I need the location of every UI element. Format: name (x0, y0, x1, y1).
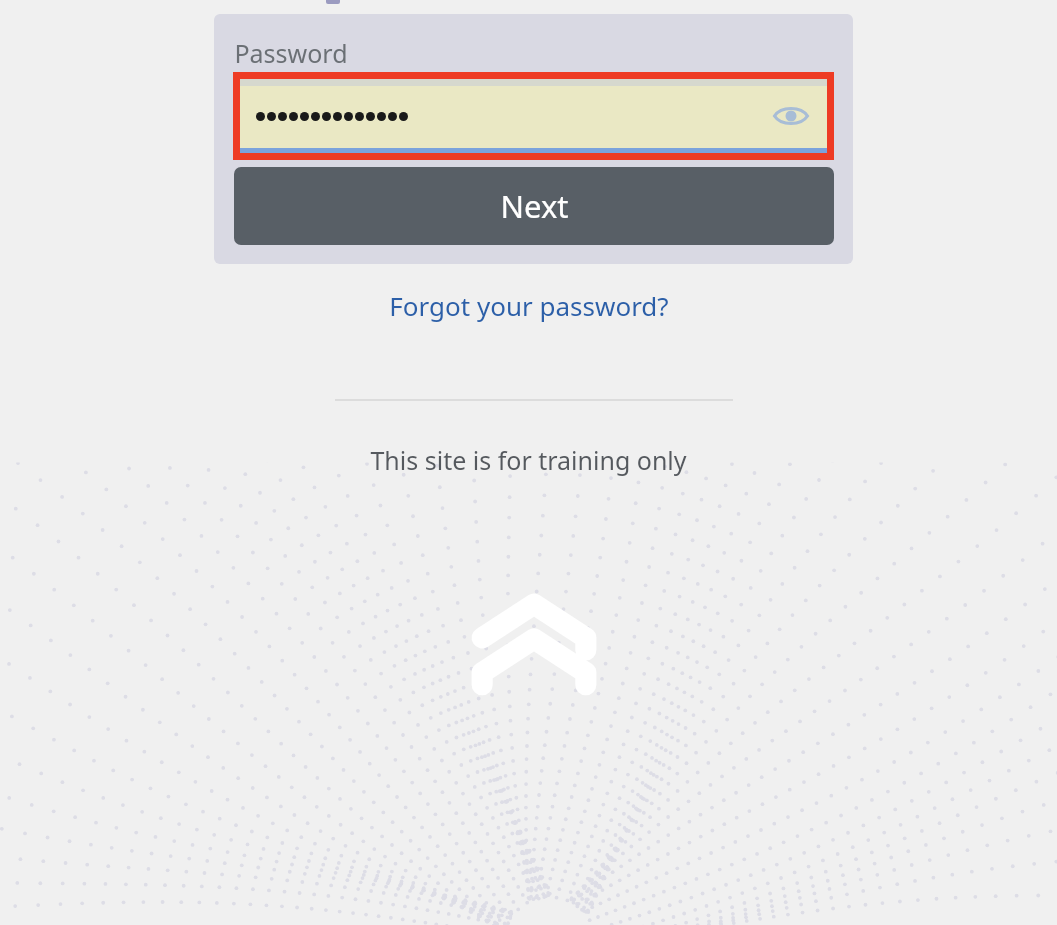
staticText: Forgot your password? (389, 288, 669, 323)
button[interactable]: Show password (240, 79, 827, 153)
button[interactable]: Next (234, 167, 834, 245)
button[interactable]: Forgot your password? (0, 286, 1057, 324)
staticText: Next (500, 185, 569, 227)
other: Logo (470, 592, 598, 708)
staticText: This site is for training only (370, 443, 687, 477)
staticText: Password (234, 36, 348, 70)
button[interactable]: Show password (769, 94, 813, 138)
